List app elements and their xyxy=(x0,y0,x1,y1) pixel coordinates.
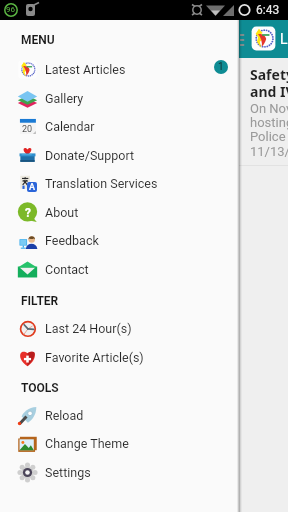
staticText: Change Theme xyxy=(45,436,129,451)
staticText: ? xyxy=(25,206,31,220)
button[interactable]: Gallery xyxy=(0,84,239,112)
staticText: Translation Services xyxy=(45,176,158,191)
staticText: 1 xyxy=(218,61,224,73)
staticText: FILTER xyxy=(21,294,59,308)
staticText: TOOLS xyxy=(21,381,59,395)
button[interactable]: A xyxy=(0,169,239,197)
button[interactable]: Last 24 Hour(s) xyxy=(0,314,239,342)
button[interactable]: Latest Articles xyxy=(0,55,239,83)
staticText: Gallery xyxy=(45,91,84,106)
button[interactable]: Change Theme xyxy=(0,429,239,457)
button[interactable]: Contact xyxy=(0,255,239,283)
button[interactable]: 20 xyxy=(0,112,239,140)
staticText: A xyxy=(29,182,35,192)
button[interactable]: Feedback xyxy=(0,226,239,254)
staticText: Last 24 Hour(s) xyxy=(45,321,132,336)
staticText: 20 xyxy=(22,124,33,135)
button[interactable]: Reload xyxy=(0,401,239,429)
button[interactable]: Donate/Support xyxy=(0,141,239,169)
staticText: Settings xyxy=(45,465,91,480)
staticText: Reload xyxy=(45,408,84,423)
staticText: On November 12th, UCSB will be hosting i… xyxy=(250,101,288,144)
staticText: Feedback xyxy=(45,233,99,248)
staticText: Latest Articles xyxy=(280,31,288,47)
staticText: Calendar xyxy=(45,119,95,134)
staticText: About xyxy=(45,205,79,220)
staticText: 6:43 xyxy=(256,3,280,17)
button[interactable]: Settings xyxy=(0,458,239,486)
staticText: Donate/Support xyxy=(45,148,135,163)
staticText: 96 xyxy=(6,5,15,14)
staticText: MENU xyxy=(21,33,55,47)
staticText: Latest Articles xyxy=(45,62,126,77)
staticText: Safety Tips for Halloween and IV Weekend xyxy=(250,65,288,101)
staticText: Contact xyxy=(45,262,89,277)
staticText: 11/13/2016 xyxy=(250,144,288,159)
button[interactable]: ? xyxy=(0,198,239,226)
button[interactable]: Open navigation menu xyxy=(228,20,264,56)
button[interactable]: Favorite Article(s) xyxy=(0,343,239,371)
staticText: Favorite Article(s) xyxy=(45,350,144,365)
